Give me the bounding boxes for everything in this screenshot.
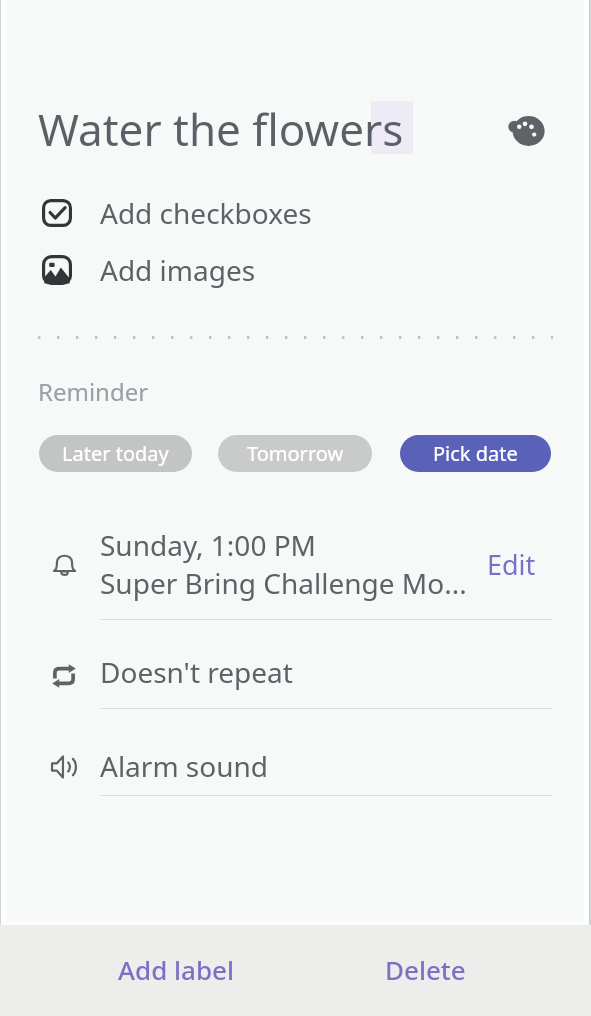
staticText: Pick date [433, 440, 518, 467]
button[interactable]: Change colour [504, 108, 550, 154]
button[interactable]: Later today [39, 435, 192, 472]
staticText: Water the flowers [38, 99, 404, 159]
button[interactable]: Delete [377, 946, 474, 993]
button[interactable]: Tomorrow [218, 435, 372, 472]
staticText: Sunday, 1:00 PM [100, 526, 317, 564]
button[interactable]: Sunday, 1:00 PM [0, 521, 591, 619]
button[interactable]: Alarm sound [0, 709, 591, 795]
staticText: Tomorrow [247, 440, 344, 467]
staticText: Add checkboxes [100, 194, 312, 232]
staticText: Later today [62, 440, 169, 467]
staticText: Delete [385, 952, 466, 987]
staticText: Edit [487, 546, 536, 583]
button[interactable]: Add checkboxes [0, 188, 591, 238]
button[interactable]: Doesn't repeat [0, 620, 591, 708]
staticText: Doesn't repeat [100, 653, 293, 691]
staticText: Add label [118, 952, 234, 987]
staticText: Super Bring Challenge Mo... [100, 564, 467, 602]
staticText: Add images [100, 251, 256, 289]
button[interactable]: Pick date [400, 435, 551, 472]
button[interactable]: Add images [0, 245, 591, 295]
staticText: Alarm sound [100, 747, 269, 785]
staticText: Reminder [38, 375, 149, 408]
button[interactable]: Add label [110, 946, 242, 993]
button[interactable]: Edit [483, 543, 540, 586]
